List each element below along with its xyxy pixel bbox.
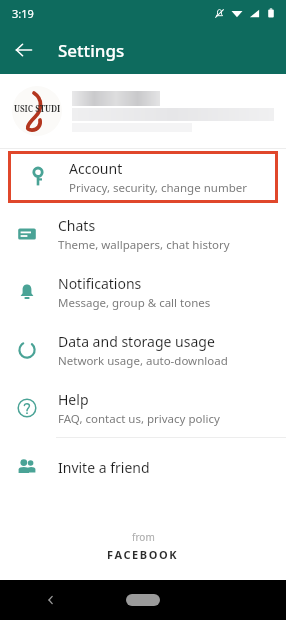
staticText: Theme, wallpapers, chat history <box>58 237 230 253</box>
staticText: Invite a friend <box>58 458 150 477</box>
button[interactable]: Data and storage usage <box>0 321 286 379</box>
staticText: Network usage, auto-download <box>58 353 228 369</box>
staticText: Help <box>58 390 89 409</box>
staticText: Message, group & call tones <box>58 295 211 311</box>
staticText: from <box>132 530 155 544</box>
button[interactable]: USIC STUDI <box>0 74 286 148</box>
button[interactable]: Account <box>11 154 275 200</box>
staticText: Privacy, security, change number <box>69 180 247 196</box>
staticText: Settings <box>58 39 125 62</box>
button[interactable]: Home <box>126 594 160 606</box>
staticText: Data and storage usage <box>58 332 215 351</box>
button[interactable]: Chats <box>0 205 286 263</box>
staticText: 3:19 <box>12 6 34 21</box>
staticText: Account <box>69 159 123 178</box>
staticText: FACEBOOK <box>107 547 179 562</box>
button[interactable]: Back <box>4 30 44 70</box>
staticText: Chats <box>58 216 96 235</box>
staticText: USIC STUDI <box>14 103 61 114</box>
staticText: FAQ, contact us, privacy policy <box>58 411 220 427</box>
button[interactable]: Help <box>0 379 286 437</box>
button[interactable]: Notifications <box>0 263 286 321</box>
staticText: Notifications <box>58 274 142 293</box>
button[interactable]: Back <box>38 587 64 613</box>
button[interactable]: Invite a friend <box>0 438 286 496</box>
